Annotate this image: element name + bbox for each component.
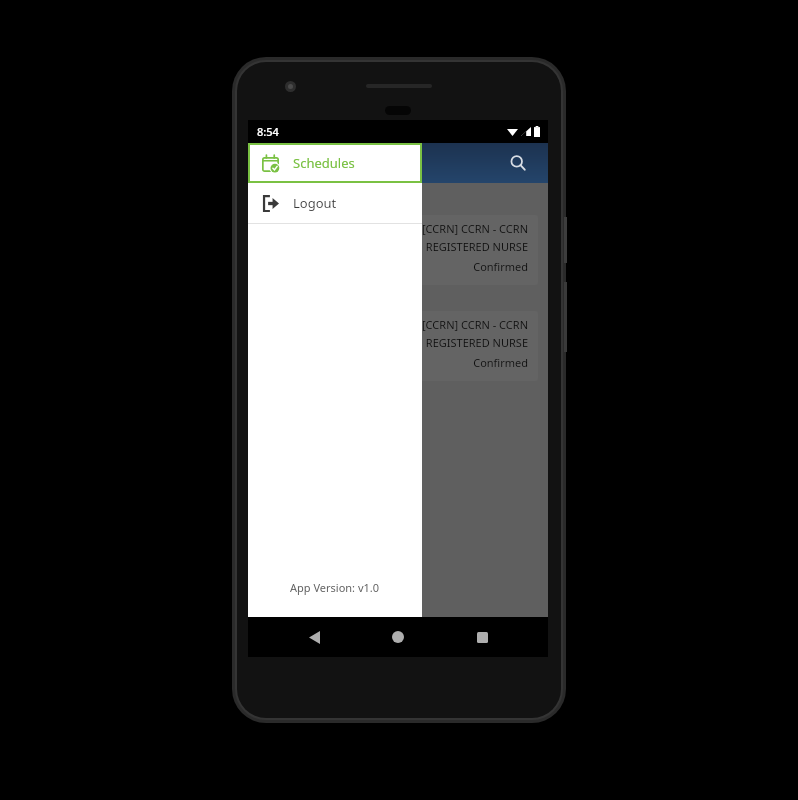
staticText: [CCRN] CCRN - CCRN — [421, 221, 528, 236]
staticText: 8:54 — [257, 124, 279, 139]
button[interactable]: Recent apps — [464, 619, 500, 655]
staticText: [CCRN] CCRN - CCRN — [421, 317, 528, 332]
staticText: REGISTERED NURSE — [425, 239, 528, 254]
button[interactable]: Home — [380, 619, 416, 655]
button[interactable]: Back — [296, 619, 332, 655]
button[interactable]: Schedules — [248, 143, 422, 183]
button[interactable]: Logout — [248, 183, 422, 223]
staticText: Confirmed — [473, 355, 528, 370]
staticText: REGISTERED NURSE — [425, 335, 528, 350]
button[interactable]: [CCRN] CCRN - CCRN — [258, 311, 538, 381]
staticText: App Version: v1.0 — [290, 580, 380, 595]
staticText: Confirmed — [473, 259, 528, 274]
staticText: Schedules — [293, 154, 355, 172]
button[interactable]: Search — [504, 149, 532, 177]
staticText: Logout — [293, 194, 337, 212]
button[interactable]: [CCRN] CCRN - CCRN — [258, 215, 538, 285]
